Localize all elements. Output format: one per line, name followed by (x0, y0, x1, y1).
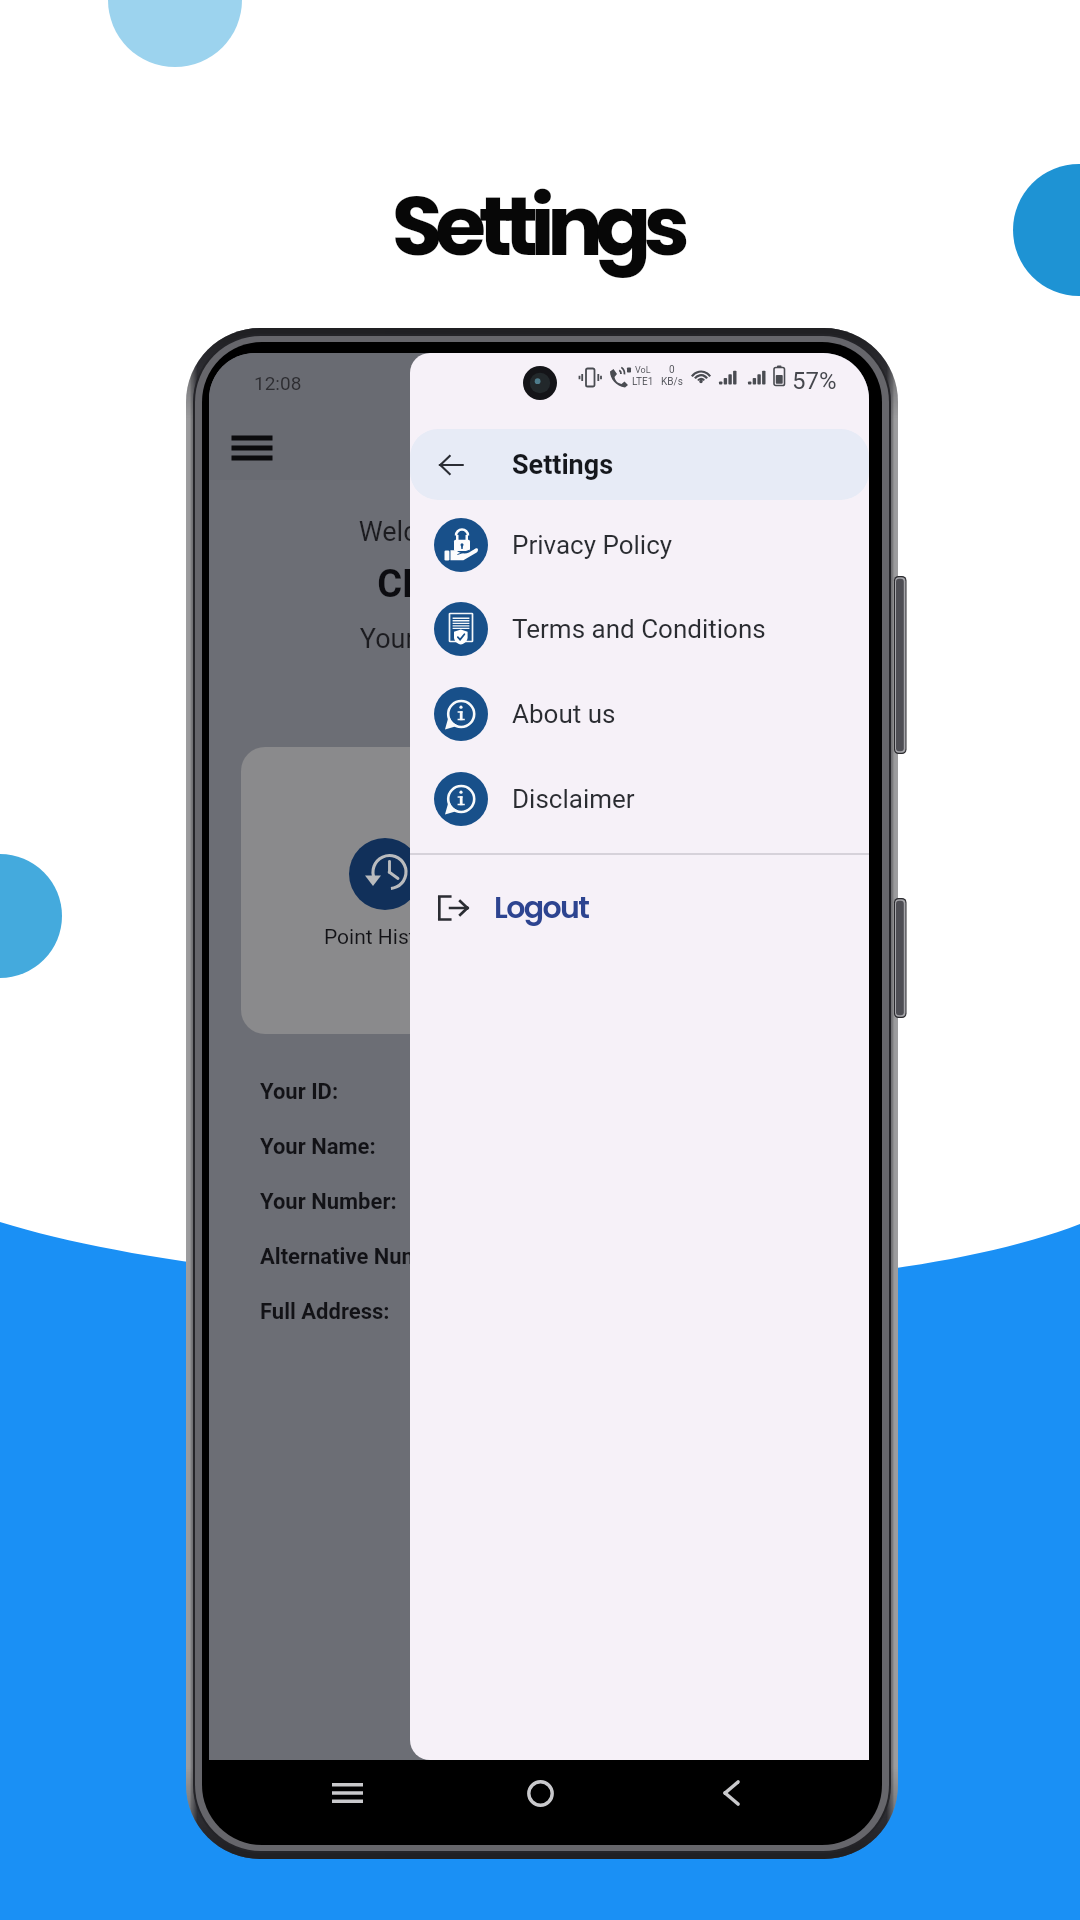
button[interactable]: Recents (321, 1767, 373, 1819)
staticText: Alternative Number: (260, 1244, 460, 1270)
staticText: 0 (669, 364, 675, 376)
staticText: About us (512, 699, 616, 729)
staticText: Your Number: (260, 1189, 397, 1215)
button[interactable]: Back (427, 441, 475, 489)
staticText: 57% (792, 367, 837, 395)
button[interactable]: Menu (232, 428, 272, 468)
staticText: Settings (0, 168, 1077, 284)
staticText: Your Current Reward Points: 0 (209, 623, 869, 655)
button[interactable]: Home (514, 1767, 566, 1819)
button[interactable]: Privacy Policy (410, 502, 869, 587)
staticText: Terms and Conditions (512, 614, 766, 644)
staticText: Disclaimer (512, 784, 635, 814)
staticText: 12:08 (254, 372, 302, 394)
staticText: Your ID: (260, 1079, 339, 1105)
staticText: LTE1 (632, 376, 654, 388)
staticText: Your Name: (260, 1134, 376, 1160)
button[interactable]: Logout (410, 871, 869, 945)
button[interactable]: Disclaimer (410, 756, 869, 841)
button[interactable]: Back (705, 1767, 757, 1819)
staticText: Logout (494, 887, 589, 929)
button[interactable]: Back (410, 429, 869, 500)
button[interactable]: Point History (241, 747, 527, 1034)
staticText: KB/s (661, 376, 683, 388)
button[interactable]: Redeem Points (551, 747, 837, 1034)
staticText: Settings (512, 449, 614, 481)
staticText: Welcome To Our Application !! (209, 516, 869, 548)
staticText: Point History (324, 925, 445, 950)
button[interactable]: Terms and Conditions (410, 586, 869, 671)
staticText: Full Address: (260, 1299, 390, 1325)
staticText: CHANDAN KUMAR (209, 562, 869, 607)
staticText: Privacy Policy (512, 530, 673, 560)
button[interactable]: About us (410, 671, 869, 756)
staticText: VoL (635, 365, 651, 376)
